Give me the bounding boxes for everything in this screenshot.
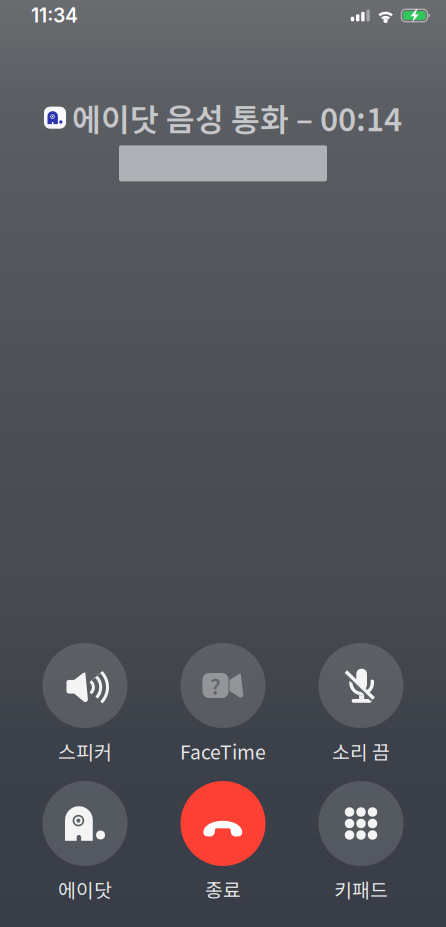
button[interactable]: 키패드 [292, 781, 430, 903]
button[interactable]: 종료 [154, 781, 292, 903]
staticText: 에이닷 음성 통화 – 00:14 [72, 95, 402, 140]
staticText: 소리 끔 [332, 737, 390, 765]
staticText: FaceTime [180, 737, 266, 765]
staticText: 종료 [205, 875, 241, 903]
staticText: ? [210, 670, 221, 701]
staticText: 스피커 [58, 737, 112, 765]
staticText: 에이닷 [58, 875, 112, 903]
button[interactable]: 스피커 [16, 643, 154, 765]
staticText: 키패드 [334, 875, 388, 903]
button[interactable]: ? [154, 643, 292, 765]
button[interactable]: 소리 끔 [292, 643, 430, 765]
button[interactable]: 에이닷 [16, 781, 154, 903]
staticText: 11:34 [31, 4, 78, 27]
